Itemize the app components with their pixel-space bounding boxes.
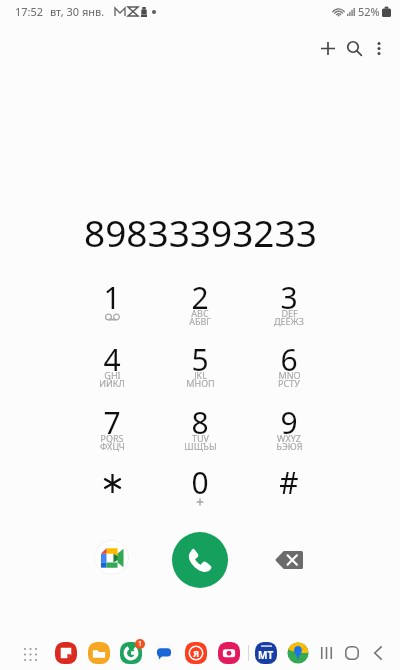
staticText: 8 [191,403,209,443]
staticText: 52% [358,4,380,19]
button[interactable]: Backspace [268,545,309,574]
button[interactable]: Call [172,532,228,588]
staticText: WXYZ [277,432,301,444]
button[interactable]: Video call [94,540,129,575]
button[interactable]: More options [357,27,400,70]
button[interactable]: Home [340,641,364,665]
button[interactable]: Notes [55,642,77,664]
staticText: 5 [191,340,209,380]
staticText: 7 [103,403,121,443]
staticText: ДЕЁЖЗ [274,315,304,327]
staticText: GHI [104,369,121,381]
staticText: 17:52 [15,4,44,19]
staticText: JKL [194,369,207,381]
staticText: TUV [192,432,209,444]
button[interactable]: Messages [153,642,175,664]
button[interactable]: Apps [21,645,39,663]
staticText: вт, 30 янв. [50,4,105,19]
staticText: DEF [281,307,298,319]
button[interactable]: 4 [73,340,151,400]
button[interactable]: Back [366,641,390,665]
staticText: ИЙКЛ [99,377,125,389]
staticText: # [279,463,299,503]
staticText: ШЩЪЫ [184,440,217,452]
button[interactable]: MT [255,642,277,664]
button[interactable]: 3 [250,278,328,338]
button[interactable]: 5 [161,340,239,400]
button[interactable]: # [250,463,328,523]
staticText: 1 [138,639,143,649]
staticText: РСТУ [278,377,300,389]
staticText: АБВГ [189,315,211,327]
button[interactable]: 6 [250,340,328,400]
staticText: 89833393233 [84,207,317,257]
button[interactable]: * [73,463,151,523]
button[interactable]: Add contact [306,27,349,70]
staticText: MT [258,648,274,662]
button[interactable]: 1 [73,278,151,338]
staticText: ФХЦЧ [100,440,125,452]
button[interactable]: 8 [161,403,239,463]
button[interactable]: Maps [287,642,309,664]
staticText: 4 [103,340,121,380]
staticText: МНОП [186,377,215,389]
staticText: Я [193,647,200,659]
staticText: 9 [280,403,298,443]
staticText: ЬЭЮЯ [276,440,303,452]
button[interactable]: Search [333,27,376,70]
button[interactable]: 7 [73,403,151,463]
staticText: 0 [191,463,209,503]
button[interactable]: Recent apps [314,641,338,665]
button[interactable]: Camera [218,642,240,664]
button[interactable]: Phone [120,642,142,664]
button[interactable]: Yandex [185,642,207,664]
staticText: 2 [191,278,209,318]
staticText: PQRS [100,432,124,444]
button[interactable]: 9 [250,403,328,463]
staticText: 1 [103,278,121,318]
staticText: 6 [280,340,298,380]
button[interactable]: 2 [161,278,239,338]
staticText: MNO [278,369,301,381]
button[interactable]: Files [88,642,110,664]
staticText: ABC [191,307,209,319]
staticText: 3 [280,278,298,318]
button[interactable]: 0 [161,463,239,523]
